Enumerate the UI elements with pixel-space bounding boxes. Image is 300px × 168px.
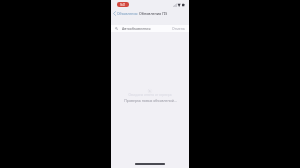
staticText: Обновления ГIS bbox=[139, 11, 168, 16]
staticText: Отмена bbox=[172, 26, 185, 31]
staticText: Проверка новых объявлений... bbox=[124, 98, 177, 103]
button[interactable]: Back bbox=[111, 9, 140, 18]
button[interactable]: Автообъявления bbox=[115, 25, 171, 32]
button[interactable]: Отмена bbox=[171, 25, 186, 32]
other: Back bbox=[113, 11, 116, 16]
staticText: Объявления bbox=[117, 11, 138, 16]
staticText: Ожидаем ответа от сервера bbox=[128, 93, 172, 97]
staticText: 9:41 bbox=[120, 3, 126, 7]
staticText: Автообъявления bbox=[122, 26, 151, 31]
